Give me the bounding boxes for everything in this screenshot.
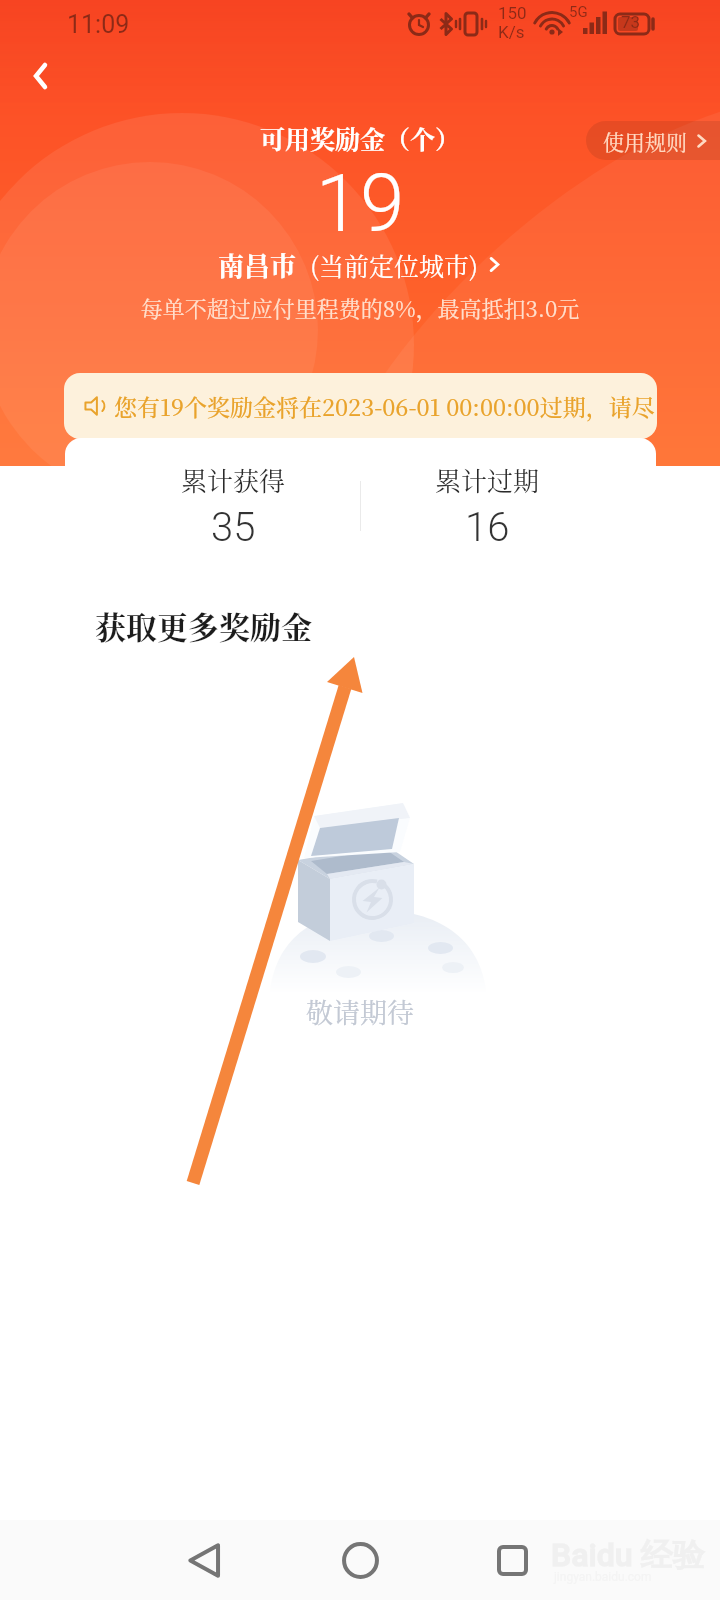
staticText: 可用奖励金（个） bbox=[0, 120, 720, 156]
staticText: (当前定位城市) bbox=[310, 247, 479, 283]
staticText: K/s bbox=[498, 22, 525, 42]
staticText: 5G bbox=[569, 3, 588, 21]
button[interactable]: 累计过期 bbox=[361, 461, 614, 551]
staticText: 累计获得 bbox=[181, 461, 286, 498]
button[interactable]: 使用规则 bbox=[586, 121, 720, 160]
staticText: 您有19个奖励金将在2023-06-01 00:00:00过期，请尽 bbox=[114, 390, 655, 423]
staticText: 11:09 bbox=[67, 10, 130, 39]
staticText: 16 bbox=[465, 504, 510, 551]
staticText: 35 bbox=[211, 504, 256, 551]
staticText: 每单不超过应付里程费的8%，最高抵扣3.0元 bbox=[0, 292, 720, 324]
button[interactable]: Recent apps bbox=[482, 1530, 542, 1590]
staticText: 19 bbox=[0, 157, 720, 251]
staticText: 南昌市 bbox=[218, 246, 297, 283]
button[interactable]: 您有19个奖励金将在2023-06-01 00:00:00过期，请尽 bbox=[64, 373, 657, 439]
staticText: 获取更多奖励金 bbox=[95, 603, 312, 648]
button[interactable]: Back bbox=[14, 50, 66, 102]
button[interactable]: Home bbox=[330, 1530, 390, 1590]
staticText: 敬请期待 bbox=[0, 992, 720, 1031]
staticText: 使用规则 bbox=[603, 126, 687, 156]
button[interactable]: 累计获得 bbox=[107, 461, 360, 551]
button[interactable]: 南昌市 bbox=[180, 246, 540, 283]
staticText: 150 bbox=[498, 3, 527, 23]
staticText: Baidu 经验 bbox=[551, 1535, 705, 1575]
staticText: 累计过期 bbox=[435, 461, 540, 498]
button[interactable]: Back bbox=[175, 1530, 235, 1590]
staticText: 73 bbox=[621, 12, 641, 32]
